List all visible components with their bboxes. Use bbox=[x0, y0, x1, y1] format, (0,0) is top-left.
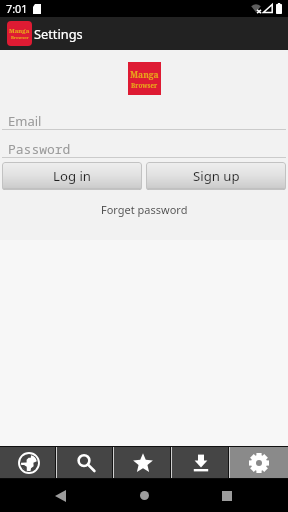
button[interactable]: Recents bbox=[203, 479, 251, 512]
staticText: Manga bbox=[130, 69, 159, 81]
staticText: Sign up bbox=[193, 167, 240, 185]
staticText: Browser bbox=[131, 81, 158, 89]
button[interactable]: Forget password bbox=[0, 200, 288, 218]
button[interactable]: Search bbox=[57, 446, 114, 479]
staticText: Settings bbox=[34, 25, 83, 42]
button[interactable]: Password bbox=[2, 130, 286, 158]
staticText: Password bbox=[8, 140, 71, 158]
button[interactable]: Back bbox=[36, 479, 84, 512]
staticText: Manga bbox=[9, 27, 30, 35]
staticText: 7:01 bbox=[6, 1, 28, 16]
button[interactable]: Home bbox=[120, 479, 168, 512]
staticText: Browser bbox=[11, 35, 29, 41]
staticText: Email bbox=[8, 112, 42, 130]
button[interactable]: Favorites bbox=[114, 446, 172, 479]
staticText: Forget password bbox=[101, 202, 188, 217]
button[interactable]: Downloads bbox=[172, 446, 230, 479]
button[interactable]: Sign up bbox=[146, 162, 286, 190]
button[interactable]: Log in bbox=[2, 162, 142, 190]
button[interactable]: Settings bbox=[230, 446, 288, 479]
staticText: Log in bbox=[53, 167, 91, 185]
button[interactable]: Browse bbox=[0, 446, 57, 479]
button[interactable]: Email bbox=[2, 102, 286, 130]
